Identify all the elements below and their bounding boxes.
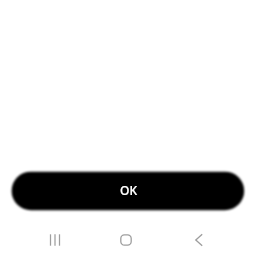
button[interactable]: Back (185, 226, 213, 254)
staticText: OK (120, 182, 137, 198)
button[interactable]: OK (12, 172, 245, 211)
button[interactable]: Home (112, 226, 140, 254)
button[interactable]: Recent apps (41, 226, 69, 254)
